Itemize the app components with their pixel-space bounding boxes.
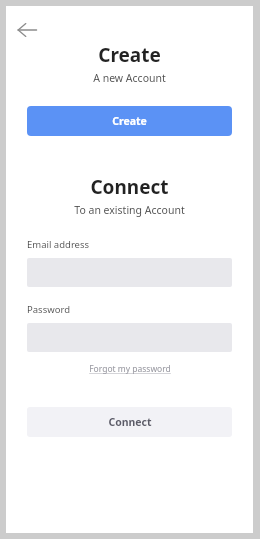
staticText: Connect bbox=[108, 415, 152, 429]
staticText: Create bbox=[98, 42, 161, 68]
staticText: To an existing Account bbox=[74, 203, 185, 217]
button[interactable]: Back bbox=[9, 12, 45, 48]
staticText: Connect bbox=[90, 174, 169, 200]
staticText: Forgot my password bbox=[89, 363, 171, 375]
staticText: Email address bbox=[27, 238, 90, 251]
button[interactable]: Forgot my password bbox=[89, 363, 171, 375]
staticText: Password bbox=[27, 303, 70, 316]
staticText: Create bbox=[112, 114, 147, 128]
button[interactable]: Connect bbox=[27, 407, 232, 437]
staticText: A new Account bbox=[93, 71, 166, 85]
button[interactable]: Create bbox=[27, 106, 232, 136]
